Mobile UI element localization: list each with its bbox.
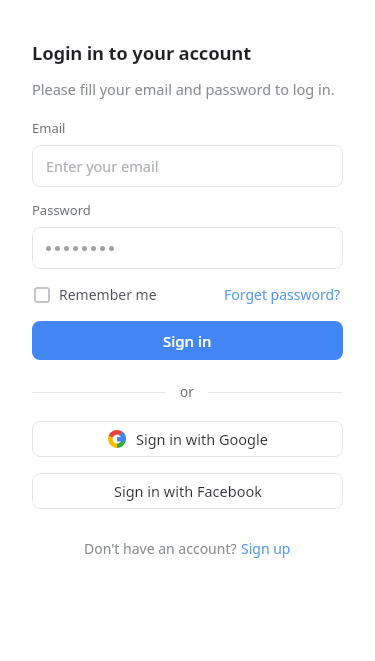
button[interactable] xyxy=(32,227,343,269)
staticText: Remember me xyxy=(59,285,157,304)
staticText: Enter your email xyxy=(46,156,159,176)
staticText: Don't have an account? xyxy=(84,539,241,558)
button[interactable]: Enter your email xyxy=(32,145,343,187)
staticText: Sign in with Facebook xyxy=(114,481,262,501)
staticText: or xyxy=(180,383,194,401)
staticText: Sign in xyxy=(163,331,212,351)
button[interactable]: Forget password? xyxy=(222,281,343,308)
staticText: Sign up xyxy=(241,539,291,558)
other: Google logo xyxy=(108,430,126,448)
staticText: Login in to your account xyxy=(32,40,251,65)
staticText: Password xyxy=(32,201,91,219)
button[interactable]: Sign in xyxy=(32,321,343,360)
button[interactable]: Google logo xyxy=(32,421,343,457)
staticText: Forget password? xyxy=(224,285,341,304)
staticText: Email xyxy=(32,119,66,137)
staticText: Sign in with Google xyxy=(136,429,268,449)
staticText: Please fill your email and password to l… xyxy=(32,79,335,99)
button[interactable]: Remember me xyxy=(32,281,159,308)
button[interactable]: Sign up xyxy=(241,539,291,558)
button[interactable]: Sign in with Facebook xyxy=(32,473,343,509)
